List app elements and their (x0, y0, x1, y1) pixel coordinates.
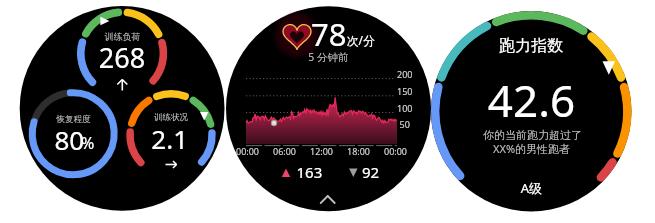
button[interactable] (0, 0, 655, 223)
